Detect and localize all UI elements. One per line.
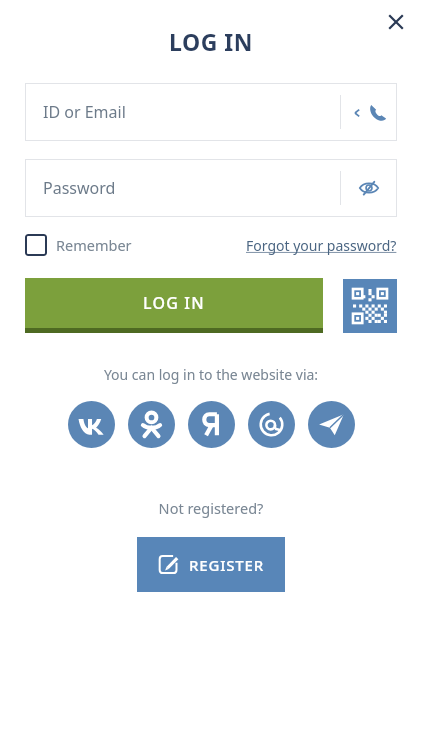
button[interactable]: Log in with VK [68, 401, 115, 448]
button[interactable]: Close [376, 2, 416, 42]
staticText: ID or Email [43, 101, 340, 123]
button[interactable]: LOG IN [25, 278, 323, 333]
button[interactable]: REGISTER [137, 537, 285, 592]
staticText: You can log in to the website via: [0, 365, 422, 384]
staticText: Not registered? [0, 498, 422, 518]
staticText: LOG IN [0, 26, 422, 57]
button[interactable]: Forgot your password? [246, 236, 397, 255]
staticText: Password [43, 177, 340, 199]
button[interactable]: Log in with Mail [248, 401, 295, 448]
staticText: REGISTER [189, 555, 264, 575]
button[interactable]: Password [25, 159, 397, 217]
staticText: Remember [56, 235, 132, 255]
button[interactable]: Log in with Telegram [308, 401, 355, 448]
staticText: LOG IN [143, 292, 205, 314]
button[interactable]: Log in with Odnoklassniki [128, 401, 175, 448]
button[interactable]: Remember [25, 234, 132, 256]
button[interactable]: Log in with Yandex [188, 401, 235, 448]
button[interactable]: ID or Email [25, 83, 397, 141]
button[interactable]: Log in with QR code [343, 279, 397, 333]
staticText: Forgot your password? [246, 236, 397, 255]
